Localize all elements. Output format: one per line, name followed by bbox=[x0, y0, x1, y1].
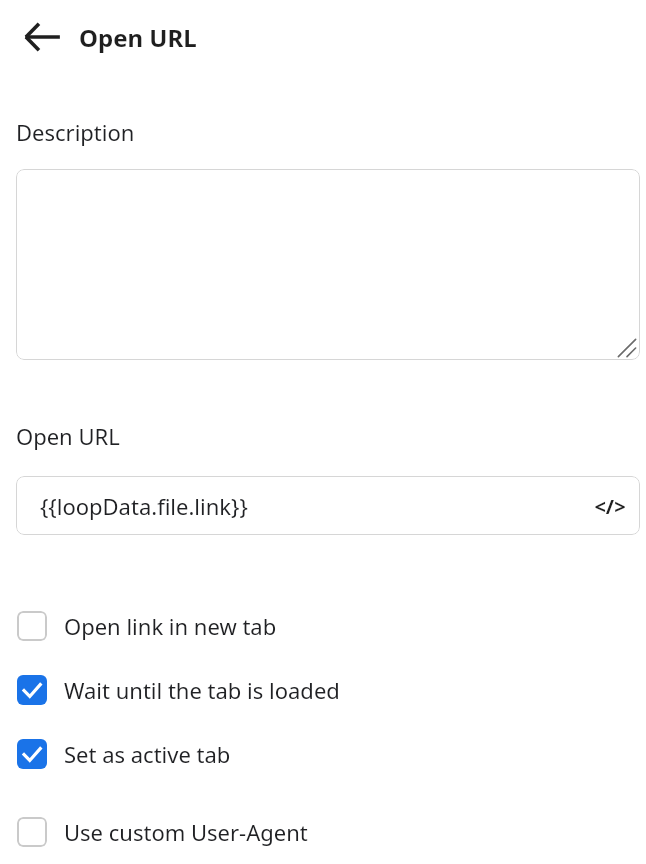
button[interactable]: Back bbox=[12, 7, 72, 67]
staticText: </> bbox=[594, 493, 626, 520]
button[interactable]: Open link in new tab bbox=[6, 604, 640, 648]
staticText: Open URL bbox=[79, 21, 197, 54]
staticText: Description bbox=[16, 117, 135, 147]
staticText: Use custom User-Agent bbox=[64, 817, 308, 847]
staticText: Open link in new tab bbox=[64, 611, 277, 641]
button[interactable]: Wait until the tab is loaded bbox=[6, 668, 640, 712]
staticText: Set as active tab bbox=[64, 739, 231, 769]
staticText: {{loopData.file.link}} bbox=[40, 491, 248, 521]
staticText: Wait until the tab is loaded bbox=[64, 675, 340, 705]
staticText: Open URL bbox=[16, 421, 120, 451]
button[interactable]: Insert variable code bbox=[588, 484, 632, 528]
button[interactable]: {{loopData.file.link}} bbox=[16, 476, 640, 535]
button[interactable]: Set as active tab bbox=[6, 732, 640, 776]
button[interactable]: Description text area bbox=[16, 169, 640, 360]
button[interactable]: Use custom User-Agent bbox=[6, 810, 640, 854]
